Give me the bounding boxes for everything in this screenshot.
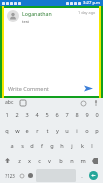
staticText: Loganathan bbox=[22, 10, 52, 17]
button[interactable]: Enter bbox=[89, 171, 98, 180]
staticText: test bbox=[22, 19, 30, 24]
staticText: j bbox=[71, 142, 73, 150]
button[interactable]: n bbox=[66, 153, 77, 168]
button[interactable]: abc bbox=[3, 98, 15, 107]
staticText: u bbox=[65, 127, 69, 135]
staticText: y bbox=[56, 127, 59, 135]
staticText: a bbox=[10, 142, 14, 150]
staticText: i bbox=[76, 127, 78, 135]
button[interactable]: p bbox=[92, 123, 102, 138]
staticText: Write Comment bbox=[8, 85, 49, 92]
staticText: 7 bbox=[65, 111, 69, 119]
button[interactable]: a bbox=[7, 138, 17, 153]
staticText: z bbox=[18, 157, 21, 165]
button[interactable]: Shift bbox=[1, 153, 14, 168]
staticText: s bbox=[21, 142, 24, 150]
staticText: abc bbox=[5, 99, 14, 106]
staticText: 6 bbox=[55, 111, 59, 119]
button[interactable]: q bbox=[1, 123, 12, 138]
button[interactable]: j bbox=[67, 138, 77, 153]
staticText: 4 bbox=[35, 111, 39, 119]
staticText: f bbox=[41, 142, 43, 150]
button[interactable]: v bbox=[44, 153, 55, 168]
button[interactable]: t bbox=[42, 123, 52, 138]
button[interactable]: 4 bbox=[32, 107, 42, 123]
staticText: h bbox=[60, 142, 64, 150]
staticText: r bbox=[36, 127, 39, 135]
button[interactable]: 0 bbox=[92, 107, 102, 123]
staticText: e bbox=[25, 127, 29, 135]
staticText: . bbox=[81, 172, 83, 180]
button[interactable]: Voice input bbox=[92, 99, 100, 107]
button[interactable]: b bbox=[55, 153, 66, 168]
button[interactable]: m bbox=[77, 153, 88, 168]
staticText: k bbox=[81, 142, 84, 150]
button[interactable]: d bbox=[27, 138, 37, 153]
button[interactable]: Send bbox=[82, 82, 95, 95]
button[interactable]: Write Comment bbox=[8, 81, 82, 96]
button[interactable]: h bbox=[57, 138, 67, 153]
staticText: 5 bbox=[45, 111, 49, 119]
button[interactable]: g bbox=[47, 138, 57, 153]
button[interactable]: 6 bbox=[52, 107, 62, 123]
staticText: 0 bbox=[95, 111, 99, 119]
button[interactable]: Sticker bbox=[19, 99, 27, 107]
staticText: t bbox=[46, 127, 49, 135]
staticText: 8 bbox=[75, 111, 79, 119]
button[interactable]: k bbox=[77, 138, 87, 153]
button[interactable]: Change language bbox=[26, 169, 35, 182]
staticText: 3 bbox=[25, 111, 29, 119]
staticText: 9 bbox=[85, 111, 89, 119]
button[interactable]: 7 bbox=[62, 107, 72, 123]
button[interactable]: w bbox=[12, 123, 22, 138]
button[interactable]: y bbox=[52, 123, 62, 138]
staticText: b bbox=[59, 157, 63, 165]
button[interactable]: Emoji bbox=[17, 169, 26, 182]
button[interactable]: z bbox=[14, 153, 24, 168]
staticText: n bbox=[70, 157, 74, 165]
staticText: 2 bbox=[15, 111, 19, 119]
button[interactable]: e bbox=[22, 123, 32, 138]
staticText: 1 day ago bbox=[78, 10, 96, 15]
button[interactable]: c bbox=[34, 153, 44, 168]
button[interactable]: o bbox=[82, 123, 92, 138]
button[interactable]: 3 bbox=[22, 107, 32, 123]
staticText: g bbox=[50, 142, 54, 150]
staticText: w bbox=[15, 127, 20, 135]
button[interactable]: Settings bbox=[79, 99, 87, 107]
staticText: l bbox=[91, 142, 93, 150]
staticText: d bbox=[30, 142, 34, 150]
staticText: 1 bbox=[5, 111, 9, 119]
button[interactable]: i bbox=[72, 123, 82, 138]
button[interactable]: f bbox=[37, 138, 47, 153]
button[interactable]: Loganathan bbox=[4, 8, 99, 26]
staticText: o bbox=[85, 127, 89, 135]
button[interactable]: l bbox=[87, 138, 97, 153]
staticText: m bbox=[80, 157, 86, 165]
button[interactable]: u bbox=[62, 123, 72, 138]
button[interactable]: Backspace bbox=[88, 153, 102, 168]
button[interactable]: 5 bbox=[42, 107, 52, 123]
button[interactable]: ?123 bbox=[2, 169, 17, 182]
staticText: v bbox=[48, 157, 51, 165]
staticText: p bbox=[95, 127, 99, 135]
button[interactable]: 9 bbox=[82, 107, 92, 123]
button[interactable]: 8 bbox=[72, 107, 82, 123]
button[interactable]: s bbox=[17, 138, 27, 153]
staticText: q bbox=[5, 127, 9, 135]
staticText: ?123 bbox=[5, 173, 15, 179]
button[interactable]: 1 bbox=[1, 107, 12, 123]
button[interactable]: r bbox=[32, 123, 42, 138]
staticText: 3:27 p.m bbox=[83, 0, 101, 6]
button[interactable]: 2 bbox=[12, 107, 22, 123]
button[interactable]: . bbox=[77, 169, 86, 182]
staticText: x bbox=[28, 157, 31, 165]
button[interactable]: x bbox=[24, 153, 34, 168]
staticText: c bbox=[38, 157, 41, 165]
